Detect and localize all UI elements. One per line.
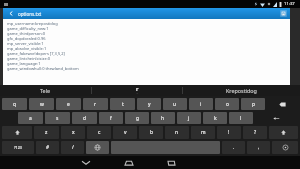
staticText: m [201,129,206,136]
staticText: options.txt [18,11,42,17]
staticText: q [13,101,16,108]
button[interactable]: Enter [255,112,298,124]
staticText: mp_server_visible:1 [7,41,44,46]
button[interactable]: c [87,126,111,139]
staticText: # [46,144,50,151]
staticText: t [122,101,124,108]
button[interactable]: f [99,112,123,124]
button[interactable]: Tele [0,85,300,96]
staticText: game_lintcheinlcisize:0 [7,56,51,61]
staticText: ? [254,129,257,136]
staticText: game_language:1 [7,61,41,66]
button[interactable]: i [189,98,213,110]
button[interactable]: Back [64,156,107,169]
staticText: j [188,115,190,122]
button[interactable]: Save [280,10,287,17]
staticText: g [136,115,139,122]
button[interactable]: u [163,98,187,110]
button[interactable]: g [125,112,149,124]
button[interactable]: k [203,112,227,124]
staticText: z [45,129,48,136]
button[interactable]: d [72,112,97,124]
button[interactable]: y [137,98,161,110]
button[interactable]: . [222,141,245,154]
button[interactable]: o [215,98,239,110]
staticText: f [110,115,112,122]
button[interactable]: e [56,98,81,110]
staticText: d [83,115,86,122]
staticText: b [150,129,153,136]
staticText: mp_absolve_visible:1 [7,46,47,51]
button[interactable]: ? [243,126,267,139]
button[interactable]: z [34,126,59,139]
button[interactable]: m [191,126,215,139]
staticText: n [175,129,179,136]
button[interactable]: Shift [269,126,298,139]
button[interactable]: Emoji [272,141,298,154]
staticText: o [226,101,229,108]
button[interactable]: / [61,141,84,154]
staticText: game_fakeworldopers [7,3,5,2] [7,51,65,56]
staticText: game_windowhull:0 thewland_bottom [7,66,79,71]
button[interactable]: b [139,126,163,139]
button[interactable]: Backspace [267,98,298,110]
button[interactable]: j [177,112,201,124]
button[interactable]: Shift [2,126,32,139]
staticText: h [161,115,165,122]
button[interactable]: Language [86,141,109,154]
button[interactable]: Recents [150,156,193,169]
staticText: r [136,85,139,92]
staticText: k [214,115,217,122]
staticText: a [29,115,32,122]
staticText: Krepostidog [226,87,257,94]
staticText: ··· [136,92,139,96]
button[interactable]: t [110,98,135,110]
button[interactable]: x [61,126,85,139]
button[interactable]: n [165,126,189,139]
staticText: ! [228,129,230,136]
button[interactable]: v [113,126,137,139]
staticText: 11:37 [284,1,295,7]
button[interactable]: p [241,98,265,110]
button[interactable]: , [247,141,270,154]
button[interactable]: r [83,98,108,110]
staticText: r [94,101,97,108]
staticText: game_difficulty_new:1 [7,26,49,31]
button[interactable]: Home [107,156,150,169]
staticText: i [200,101,202,108]
staticText: Tele [40,87,51,94]
button[interactable]: l [229,112,253,124]
staticText: u [173,101,177,108]
staticText: , [258,144,260,151]
button[interactable]: ?123 [2,141,34,154]
button[interactable]: Back [8,10,15,17]
button[interactable]: a [18,112,43,124]
staticText: x [72,129,75,136]
button[interactable]: Back [3,8,290,19]
button[interactable]: s [45,112,70,124]
button[interactable]: q [2,98,27,110]
staticText: l [240,115,242,122]
staticText: c [98,129,101,136]
staticText: . [233,144,235,151]
staticText: / [72,144,74,151]
staticText: mp_username:krepostidog [7,21,58,26]
button[interactable]: # [36,141,59,154]
staticText: v [124,129,127,136]
staticText: ?123 [14,145,22,150]
staticText: p [252,101,255,108]
staticText: e [67,101,70,108]
button[interactable]: h [151,112,175,124]
staticText: s [56,115,59,122]
staticText: y [148,101,151,108]
button[interactable]: ! [217,126,241,139]
staticText: game_thirdperson:0 [7,31,45,36]
button[interactable]: w [29,98,54,110]
staticText: gfx_dopdoraled:0.96 [7,36,46,41]
staticText: w [40,101,44,108]
